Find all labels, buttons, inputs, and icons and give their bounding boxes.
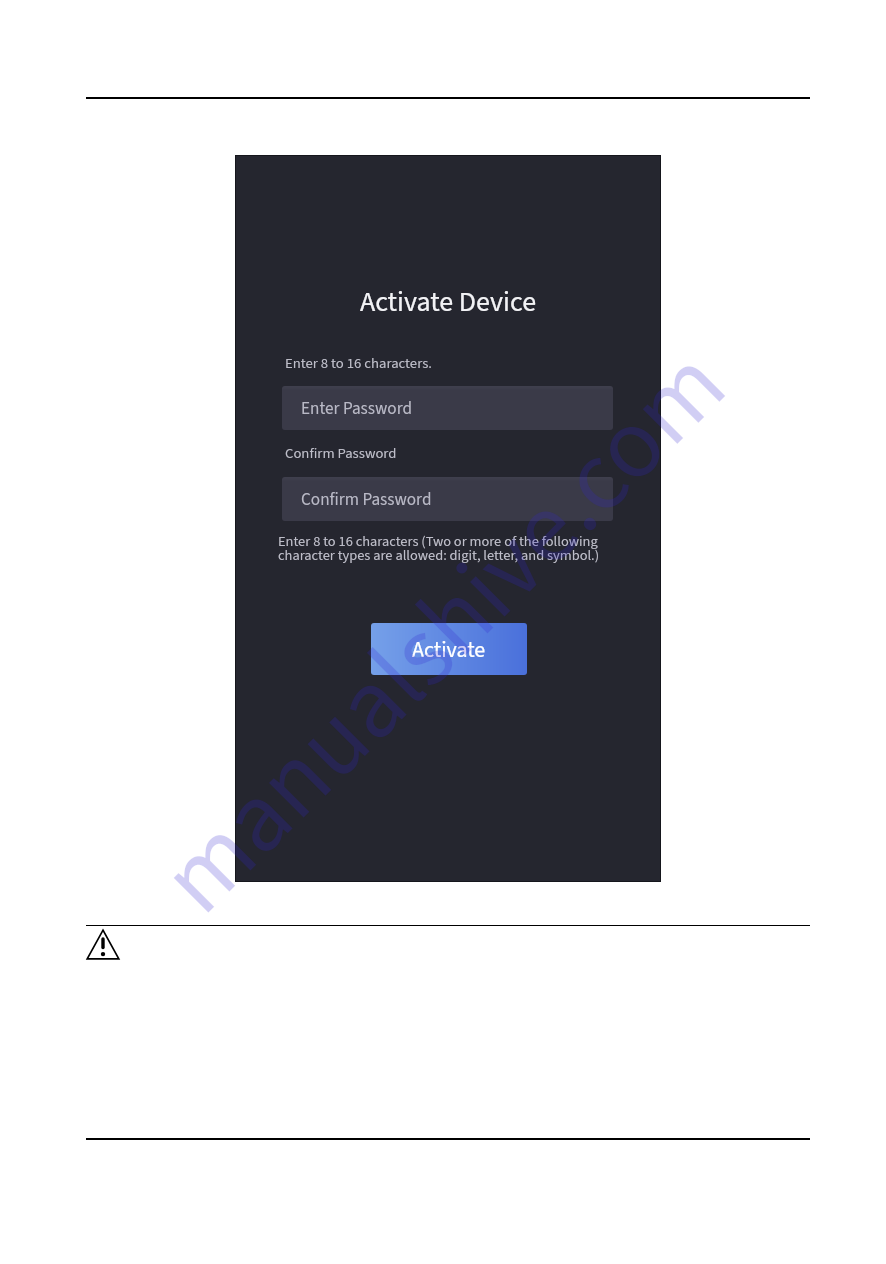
button[interactable]: Enter Password	[282, 386, 613, 430]
staticText: Activate Device	[236, 282, 660, 322]
staticText: Enter 8 to 16 characters (Two or more of…	[278, 531, 623, 566]
button[interactable]: Confirm Password	[282, 477, 613, 521]
staticText: Confirm Password	[301, 487, 432, 511]
other: Caution	[86, 929, 120, 960]
staticText: Enter 8 to 16 characters.	[285, 353, 432, 374]
staticText: Enter Password	[301, 396, 412, 420]
staticText: Activate	[412, 634, 486, 665]
staticText: Confirm Password	[285, 443, 397, 464]
button[interactable]: Activate	[371, 623, 527, 675]
